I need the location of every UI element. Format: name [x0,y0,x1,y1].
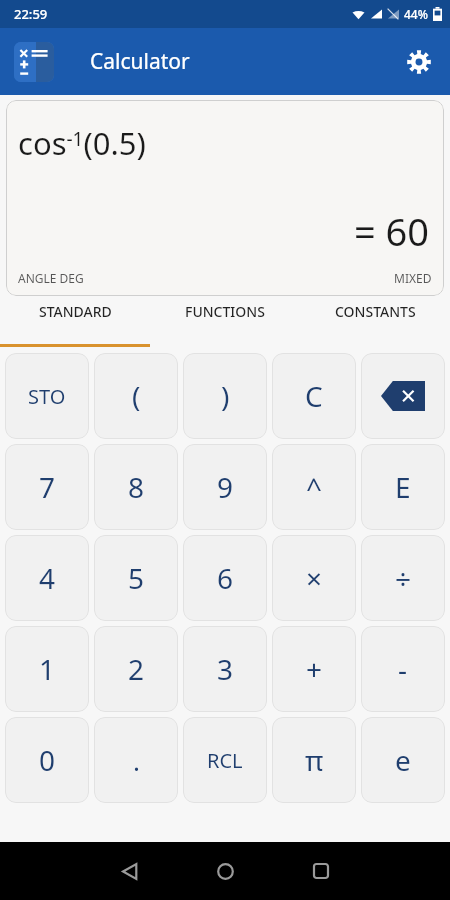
staticText: 22:59 [14,5,48,23]
button[interactable]: 6 [183,535,267,621]
staticText: 0 [39,741,56,779]
button[interactable]: 7 [5,444,89,530]
staticText: 9 [217,468,234,506]
staticText: cos-1(0.5) [18,122,146,164]
staticText: + [306,650,323,688]
staticText: ) [221,377,230,415]
button[interactable]: ) [183,353,267,439]
staticText: MIXED [394,270,432,286]
staticText: × [306,559,323,597]
button[interactable]: 1 [5,626,89,712]
button[interactable]: 5 [94,535,178,621]
button[interactable]: 8 [94,444,178,530]
staticText: = 60 [354,205,430,257]
staticText: E [395,468,411,506]
button[interactable]: FUNCTIONS [150,302,300,321]
button[interactable]: C [272,353,356,439]
staticText: ANGLE DEG [18,270,84,286]
button[interactable] [14,42,54,82]
staticText: STO [28,383,66,410]
staticText: 7 [39,468,56,506]
button[interactable]: Home [195,842,255,900]
button[interactable]: 3 [183,626,267,712]
button[interactable]: 0 [5,717,89,803]
button[interactable]: STANDARD [0,302,150,321]
button[interactable]: CONSTANTS [300,302,450,321]
staticText: - [398,650,408,688]
button[interactable]: - [361,626,445,712]
button[interactable]: Backspace [361,353,445,439]
button[interactable]: π [272,717,356,803]
button[interactable]: ( [94,353,178,439]
button[interactable]: 2 [94,626,178,712]
button[interactable]: ÷ [361,535,445,621]
staticText: π [305,741,324,779]
staticText: RCL [207,747,243,774]
button[interactable]: + [272,626,356,712]
staticText: ^ [306,468,323,506]
button[interactable]: 4 [5,535,89,621]
staticText: 44% [404,6,428,22]
staticText: . [133,743,140,778]
button[interactable]: STO [5,353,89,439]
staticText: e [395,741,411,779]
staticText: CONSTANTS [335,302,416,321]
button[interactable]: RCL [183,717,267,803]
staticText: 5 [128,559,145,597]
staticText: FUNCTIONS [185,302,265,321]
staticText: C [305,377,323,415]
button[interactable]: Recent apps [291,842,351,900]
button[interactable]: Back [99,842,159,900]
staticText: 6 [217,559,234,597]
button[interactable]: e [361,717,445,803]
staticText: 4 [39,559,56,597]
button[interactable]: . [94,717,178,803]
staticText: 3 [217,650,234,688]
staticText: Calculator [90,47,190,76]
button[interactable]: ^ [272,444,356,530]
staticText: STANDARD [39,302,112,321]
button[interactable]: E [361,444,445,530]
button[interactable]: 9 [183,444,267,530]
staticText: 2 [128,650,145,688]
staticText: 8 [128,468,145,506]
staticText: 1 [39,650,56,688]
staticText: ( [132,377,141,415]
button[interactable]: × [272,535,356,621]
button[interactable]: Settings [402,45,436,79]
staticText: ÷ [395,559,412,597]
